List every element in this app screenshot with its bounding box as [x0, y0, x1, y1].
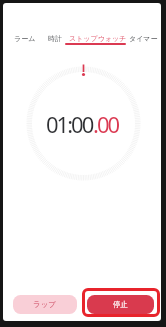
button[interactable]: タイマー	[129, 34, 158, 43]
staticText: ラーム	[14, 34, 36, 43]
staticText: ラップ	[33, 300, 57, 309]
staticText: 01:00	[46, 109, 93, 139]
button[interactable]: 時計	[48, 34, 62, 43]
button[interactable]: ラップ	[13, 295, 77, 314]
button[interactable]: ストップウォッチ	[69, 34, 127, 43]
button[interactable]: 停止	[87, 295, 154, 314]
staticText: タイマー	[129, 34, 158, 43]
staticText: 停止	[113, 300, 128, 309]
staticText: 時計	[48, 34, 62, 43]
staticText: .00	[93, 109, 119, 139]
staticText: ストップウォッチ	[69, 34, 127, 43]
button[interactable]: ラーム	[14, 34, 36, 43]
